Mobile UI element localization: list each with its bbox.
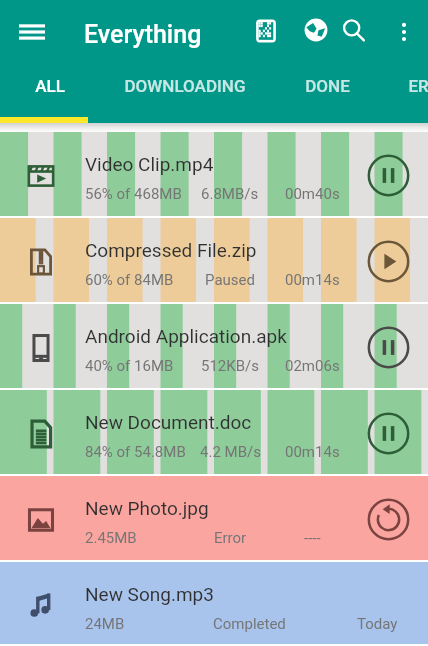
staticText: 00m14s (285, 443, 340, 461)
staticText: DOWNLOADING (124, 76, 246, 96)
button[interactable]: Open navigation drawer (10, 10, 54, 54)
staticText: Everything (84, 20, 202, 49)
staticText: Paused (205, 271, 255, 289)
button[interactable]: Resume download (364, 237, 412, 285)
button[interactable]: Open browser (294, 8, 338, 52)
button[interactable]: Pause download (364, 409, 412, 457)
staticText: 4.2 MB/s (200, 443, 261, 461)
button[interactable]: Compressed File.zip (0, 218, 428, 304)
button[interactable]: ALL (0, 57, 100, 117)
button[interactable]: Video Clip.mp4 (0, 132, 428, 218)
button[interactable]: Pause download (364, 323, 412, 371)
staticText: Android Application.apk (85, 325, 287, 347)
staticText: ALL (35, 76, 65, 96)
button[interactable]: DOWNLOADING (100, 57, 270, 117)
staticText: 56% of 468MB (85, 185, 182, 203)
staticText: Compressed File.zip (85, 239, 257, 261)
staticText: ERROR (408, 76, 428, 96)
staticText: 512KB/s (201, 357, 259, 375)
staticText: Video Clip.mp4 (85, 153, 214, 175)
button[interactable]: New Document.doc (0, 390, 428, 476)
staticText: 00m40s (285, 185, 340, 203)
staticText: 2.45MB (85, 529, 137, 547)
button[interactable]: New Song.mp3 (0, 562, 428, 646)
staticText: 6.8MB/s (201, 185, 259, 203)
button[interactable]: More options (382, 10, 426, 54)
button[interactable]: Android Application.apk (0, 304, 428, 390)
button[interactable]: Scan QR code (244, 9, 288, 53)
staticText: Completed (213, 615, 286, 633)
staticText: 00m14s (285, 271, 340, 289)
staticText: 24MB (85, 615, 125, 633)
staticText: 40% of 16MB (85, 357, 174, 375)
button[interactable]: Pause download (364, 151, 412, 199)
staticText: Today (357, 615, 398, 633)
staticText: 60% of 84MB (85, 271, 174, 289)
staticText: DONE (305, 76, 350, 96)
button[interactable]: ERROR (385, 57, 428, 117)
staticText: 02m06s (285, 357, 340, 375)
button[interactable]: Search (332, 9, 376, 53)
button[interactable]: New Photo.jpg (0, 476, 428, 562)
button[interactable]: DONE (270, 57, 385, 117)
button[interactable]: Retry download (364, 495, 412, 543)
staticText: 84% of 54.8MB (85, 443, 186, 461)
staticText: New Document.doc (85, 411, 252, 433)
staticText: Error (214, 529, 247, 547)
staticText: New Song.mp3 (85, 583, 214, 605)
staticText: ---- (304, 529, 321, 547)
staticText: New Photo.jpg (85, 497, 209, 519)
